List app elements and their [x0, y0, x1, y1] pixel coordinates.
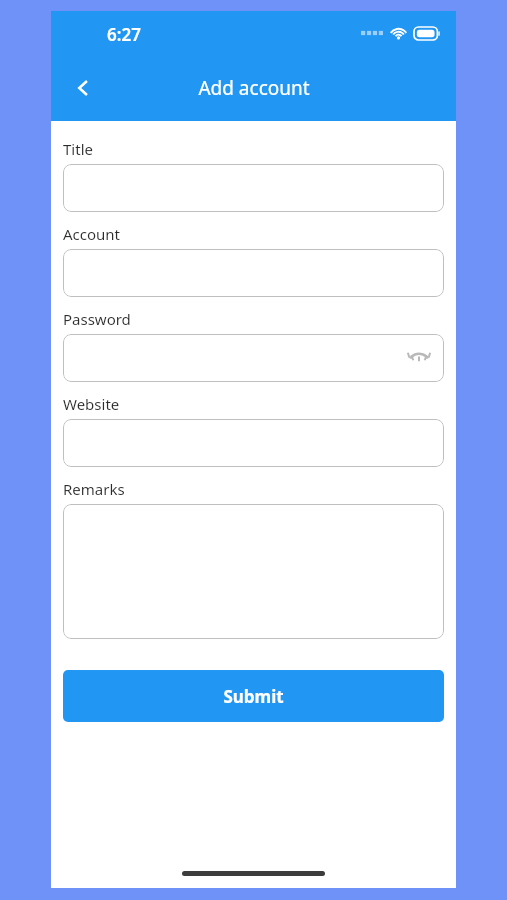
button[interactable] [63, 419, 444, 467]
staticText: Add account [198, 75, 310, 101]
button[interactable] [63, 249, 444, 297]
button[interactable] [63, 504, 444, 639]
staticText: 6:27 [107, 23, 141, 46]
button[interactable]: Back [57, 62, 109, 114]
button[interactable]: Submit [63, 670, 444, 722]
staticText: Remarks [63, 479, 125, 499]
staticText: Account [63, 224, 121, 244]
button[interactable]: Show password [402, 341, 436, 375]
staticText: Website [63, 394, 120, 414]
button[interactable] [63, 164, 444, 212]
button[interactable]: Show password [63, 334, 444, 382]
staticText: Submit [223, 685, 284, 708]
staticText: Password [63, 309, 131, 329]
staticText: Title [63, 139, 93, 159]
